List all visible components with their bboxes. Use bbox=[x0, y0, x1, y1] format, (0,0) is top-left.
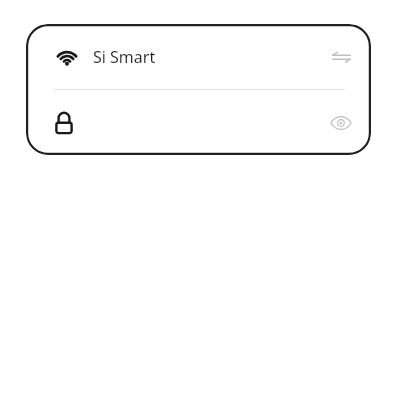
button[interactable]: Si Smart bbox=[26, 24, 371, 89]
button[interactable]: Show password bbox=[321, 103, 361, 143]
button[interactable]: Show password bbox=[26, 90, 371, 155]
staticText: Si Smart bbox=[93, 46, 156, 68]
button[interactable]: Switch network bbox=[321, 37, 361, 77]
